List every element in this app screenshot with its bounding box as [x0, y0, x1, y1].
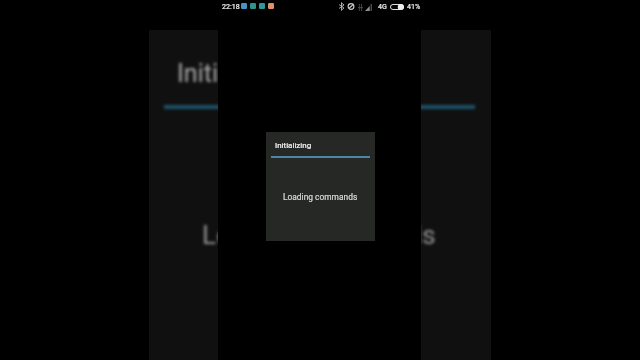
other: Battery 41 percent [390, 4, 404, 10]
staticText: 4G [378, 2, 387, 10]
other: Do not disturb [347, 3, 355, 10]
staticText: Initializing [275, 141, 312, 150]
button[interactable]: Initializing [266, 132, 375, 241]
staticText: 22:18 [222, 2, 240, 10]
staticText: Initializing [177, 59, 291, 88]
other: Bluetooth [339, 3, 344, 10]
staticText: Loading commands [283, 192, 358, 202]
staticText: 41% [407, 2, 421, 10]
staticText: Loading commands [202, 219, 436, 250]
other: Mobile signal [365, 4, 372, 11]
